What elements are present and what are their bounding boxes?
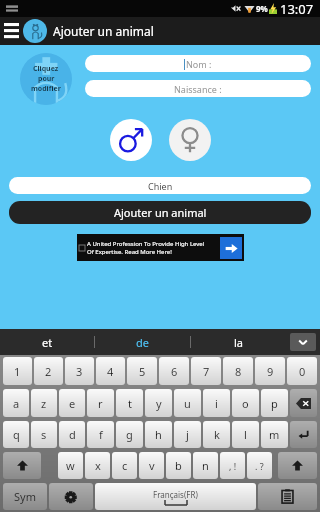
staticText: h [155, 427, 162, 442]
button[interactable]: Cliquez pour modifier [20, 53, 72, 105]
button[interactable]: la [191, 329, 286, 355]
staticText: Nom : [186, 58, 212, 70]
button[interactable]: 2 [34, 357, 63, 385]
staticText: Naissance : [174, 83, 222, 95]
staticText: 13:07 [280, 0, 314, 17]
button[interactable]: l [232, 421, 259, 448]
button[interactable]: 4 [96, 357, 125, 385]
button[interactable]: 0 [287, 357, 317, 385]
button[interactable]: r [87, 389, 114, 417]
button[interactable]: , ! [220, 452, 245, 479]
button[interactable]: z [31, 389, 57, 417]
button[interactable]: d [59, 421, 85, 448]
button[interactable]: Parametres [49, 483, 93, 510]
staticText: j [186, 427, 189, 442]
staticText: f [99, 427, 103, 442]
staticText: modifier [31, 84, 61, 94]
button[interactable]: Presse-papiers [258, 483, 317, 510]
button[interactable]: Plus de suggestions [290, 333, 316, 351]
staticText: 5 [139, 364, 146, 379]
button[interactable]: 1 [3, 357, 32, 385]
staticText: Of Expertise. Read More Here! [87, 248, 172, 256]
button[interactable]: 5 [127, 357, 157, 385]
staticText: k [214, 427, 220, 442]
button[interactable]: v [139, 452, 164, 479]
staticText: 8 [235, 364, 242, 379]
staticText: et [42, 335, 53, 350]
staticText: i [215, 396, 218, 411]
staticText: t [128, 396, 132, 411]
staticText: 4 [107, 364, 114, 379]
button[interactable]: h [145, 421, 172, 448]
button[interactable]: de [95, 329, 190, 355]
staticText: a [13, 396, 20, 411]
staticText: 7 [203, 364, 210, 379]
button[interactable]: A United Profession To Provide High Leve… [77, 234, 244, 261]
button[interactable]: et [0, 329, 94, 355]
button[interactable]: f [87, 421, 114, 448]
button[interactable]: o [232, 389, 259, 417]
button[interactable]: Femelle [169, 119, 211, 161]
staticText: , ! [229, 460, 237, 472]
staticText: Français(FR) [153, 489, 198, 500]
staticText: x [95, 458, 101, 473]
button[interactable]: Menu [0, 17, 22, 45]
button[interactable]: 9 [255, 357, 285, 385]
button[interactable]: g [116, 421, 143, 448]
staticText: Ajouter un animal [53, 23, 154, 39]
button[interactable]: Naissance : [85, 80, 311, 97]
staticText: 6 [171, 364, 178, 379]
button[interactable]: j [174, 421, 201, 448]
button[interactable]: t [116, 389, 143, 417]
staticText: A United Profession To Provide High Leve… [87, 240, 205, 248]
button[interactable]: s [31, 421, 57, 448]
button[interactable]: Male [110, 119, 152, 161]
button[interactable]: u [174, 389, 201, 417]
staticText: la [234, 335, 244, 350]
button[interactable]: Espace [95, 483, 256, 510]
button[interactable]: . ? [247, 452, 272, 479]
staticText: n [202, 458, 209, 473]
button[interactable]: w [58, 452, 83, 479]
button[interactable]: Sym [3, 483, 47, 510]
staticText: q [13, 427, 20, 442]
staticText: Cliquez [33, 64, 59, 74]
button[interactable]: Entree [290, 421, 317, 448]
button[interactable]: i [203, 389, 230, 417]
button[interactable]: m [261, 421, 288, 448]
staticText: e [69, 396, 76, 411]
staticText: u [184, 396, 191, 411]
button[interactable]: x [85, 452, 110, 479]
button[interactable]: b [166, 452, 191, 479]
button[interactable]: Chien [9, 177, 311, 194]
staticText: z [41, 396, 47, 411]
button[interactable]: 7 [191, 357, 221, 385]
staticText: 2 [45, 364, 52, 379]
button[interactable]: 3 [65, 357, 94, 385]
button[interactable]: n [193, 452, 218, 479]
button[interactable]: a [3, 389, 29, 417]
button[interactable]: 8 [223, 357, 253, 385]
staticText: m [269, 427, 280, 442]
button[interactable]: k [203, 421, 230, 448]
button[interactable]: Supprimer [290, 389, 317, 417]
button[interactable]: e [59, 389, 85, 417]
button[interactable]: p [261, 389, 288, 417]
button[interactable]: Icone application [23, 19, 47, 43]
button[interactable]: q [3, 421, 29, 448]
button[interactable]: c [112, 452, 137, 479]
button[interactable]: 6 [159, 357, 189, 385]
button[interactable]: Majuscule [3, 452, 41, 479]
staticText: 9% [256, 3, 268, 14]
staticText: s [41, 427, 47, 442]
staticText: p [271, 396, 278, 411]
button[interactable]: y [145, 389, 172, 417]
staticText: 9 [267, 364, 274, 379]
staticText: w [66, 458, 75, 473]
button[interactable]: Majuscule [278, 452, 317, 479]
staticText: 0 [299, 364, 306, 379]
button[interactable]: Ajouter un animal [9, 201, 311, 224]
staticText: o [242, 396, 249, 411]
staticText: r [98, 396, 103, 411]
button[interactable]: Nom : [85, 55, 311, 72]
